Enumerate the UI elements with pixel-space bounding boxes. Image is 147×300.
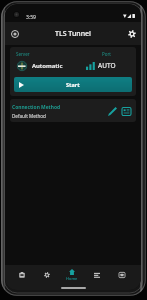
button[interactable]: Select method	[119, 104, 133, 118]
button[interactable]: Connection Method	[10, 99, 136, 122]
staticText: Start	[66, 81, 80, 88]
staticText: Default Method	[12, 113, 46, 119]
button[interactable]: Rules	[84, 265, 109, 284]
staticText: AUTO	[98, 61, 116, 70]
staticText: 3:59	[26, 14, 36, 21]
staticText: Server	[16, 51, 86, 57]
staticText: Connection Method	[12, 104, 61, 111]
button[interactable]: App logo	[9, 28, 21, 40]
button[interactable]: Home	[59, 265, 84, 284]
button[interactable]: Settings	[34, 265, 59, 284]
staticText: TLS Tunnel	[55, 29, 92, 39]
button[interactable]: AUTO	[86, 57, 134, 74]
button[interactable]: Settings	[125, 27, 139, 41]
button[interactable]: About	[109, 265, 134, 284]
button[interactable]: Logs	[10, 265, 34, 284]
button[interactable]: Automatic	[12, 57, 86, 74]
button[interactable]: Edit	[105, 104, 119, 118]
staticText: Automatic	[32, 62, 63, 70]
button[interactable]: Start	[14, 77, 132, 92]
staticText: Home	[66, 276, 78, 281]
staticText: Port	[86, 51, 127, 57]
